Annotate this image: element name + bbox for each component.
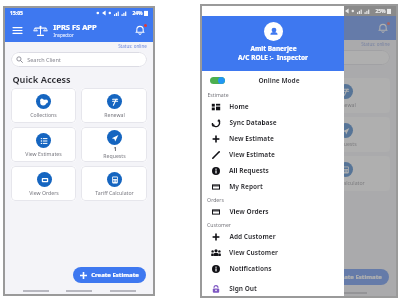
staticText: Collections bbox=[30, 111, 57, 118]
staticText: Renewal bbox=[335, 101, 356, 108]
staticText: View Orders bbox=[29, 189, 59, 196]
staticText: Home bbox=[229, 102, 249, 111]
staticText: Quick Access bbox=[12, 73, 71, 85]
button[interactable]: View Customer bbox=[202, 244, 344, 260]
button[interactable]: View Orders bbox=[202, 203, 344, 219]
button[interactable]: All Requests bbox=[202, 162, 344, 178]
staticText: New Estimate bbox=[229, 134, 274, 143]
staticText: My Report bbox=[229, 182, 263, 191]
staticText: Tariff Calculator bbox=[95, 189, 134, 196]
staticText: All Requests bbox=[229, 166, 269, 175]
button[interactable]: Notifications bbox=[202, 260, 344, 276]
button[interactable]: View Estimate bbox=[202, 146, 344, 162]
button[interactable]: New Estimate bbox=[202, 130, 344, 146]
staticText: Search Client bbox=[27, 56, 61, 63]
staticText: Inspector bbox=[53, 32, 74, 38]
staticText: A/C ROLE :- Inspector bbox=[238, 53, 308, 62]
staticText: 24% bbox=[132, 10, 143, 17]
staticText: Add Customer bbox=[229, 232, 276, 241]
staticText: View Customer bbox=[229, 248, 278, 257]
staticText: 25% bbox=[375, 8, 386, 15]
staticText: View Estimates bbox=[25, 150, 62, 157]
button[interactable]: Renewal bbox=[81, 88, 147, 123]
button[interactable]: Online Mode bbox=[202, 71, 344, 89]
staticText: Notifications bbox=[229, 264, 272, 273]
button[interactable]: Add Customer bbox=[202, 228, 344, 244]
button[interactable]: Tariff Calculator bbox=[81, 166, 147, 201]
staticText: Sync Database bbox=[229, 118, 277, 127]
staticText: View Estimates bbox=[234, 140, 271, 147]
button[interactable]: 1 bbox=[81, 127, 147, 162]
button[interactable]: Create Estimate bbox=[73, 267, 146, 283]
button[interactable]: Search Client bbox=[11, 52, 147, 67]
staticText: Create Estimate bbox=[334, 273, 382, 281]
button[interactable]: My Report bbox=[202, 178, 344, 194]
button[interactable]: Notifications bbox=[132, 22, 148, 38]
staticText: 1 bbox=[113, 145, 117, 152]
button[interactable]: Open navigation menu bbox=[10, 23, 24, 37]
staticText: Collections bbox=[239, 101, 266, 108]
button[interactable]: Collections bbox=[11, 88, 76, 123]
staticText: Status: online bbox=[361, 41, 390, 47]
button[interactable]: Home bbox=[202, 98, 344, 114]
staticText: IPRS FS APP bbox=[53, 22, 97, 32]
staticText: Sign Out bbox=[229, 284, 257, 293]
button[interactable]: Sync Database bbox=[202, 114, 344, 130]
staticText: Amit Banerjee bbox=[250, 44, 297, 53]
staticText: Tariff Calculator bbox=[326, 179, 365, 186]
staticText: 25% bbox=[375, 8, 386, 15]
staticText: Online Mode bbox=[258, 76, 300, 85]
staticText: Orders bbox=[207, 196, 224, 203]
staticText: Status: online bbox=[118, 43, 147, 49]
staticText: Estimate bbox=[207, 91, 229, 98]
staticText: View Orders bbox=[229, 207, 269, 216]
button[interactable]: View Orders bbox=[11, 166, 76, 201]
staticText: 15:05 bbox=[10, 10, 23, 17]
staticText: View Orders bbox=[237, 179, 267, 186]
button[interactable]: Sign Out bbox=[202, 280, 344, 296]
staticText: Renewal bbox=[104, 111, 125, 118]
button[interactable]: View Estimates bbox=[11, 127, 76, 162]
staticText: View Estimate bbox=[229, 150, 275, 159]
staticText: Requests bbox=[103, 152, 126, 159]
staticText: Customer bbox=[207, 221, 231, 228]
staticText: Requests bbox=[334, 140, 357, 147]
staticText: Create Estimate bbox=[91, 271, 139, 279]
